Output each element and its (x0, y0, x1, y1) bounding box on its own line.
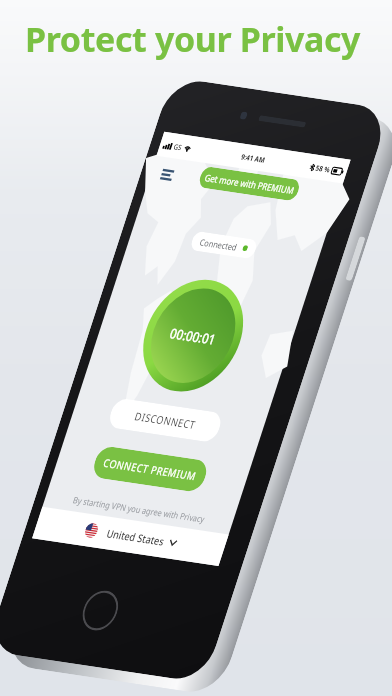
button[interactable]: Connected (185, 209, 263, 281)
staticText: Protect your Privacy (25, 16, 361, 62)
button[interactable]: DISCONNECT (100, 360, 231, 481)
button[interactable]: Get more with PREMIUM (192, 132, 306, 235)
staticText: CONNECT PREMIUM (98, 423, 202, 515)
staticText: Connected (196, 223, 242, 266)
staticText: 9:41 AM (238, 143, 269, 173)
button[interactable]: CONNECT PREMIUM (83, 407, 217, 531)
staticText: 00:00:01 (163, 308, 222, 364)
staticText: By starting VPN you agree with Privacy (69, 448, 209, 570)
button[interactable]: Menu (149, 155, 186, 194)
staticText: GS (170, 139, 186, 155)
staticText: Get more with PREMIUM (200, 140, 299, 228)
staticText: 58 % (312, 158, 334, 179)
button[interactable]: United States (25, 442, 236, 631)
staticText: United States (102, 506, 170, 568)
staticText: DISCONNECT (130, 387, 202, 453)
button[interactable]: Home (68, 576, 133, 645)
button[interactable]: 00:00:01 (104, 241, 282, 430)
